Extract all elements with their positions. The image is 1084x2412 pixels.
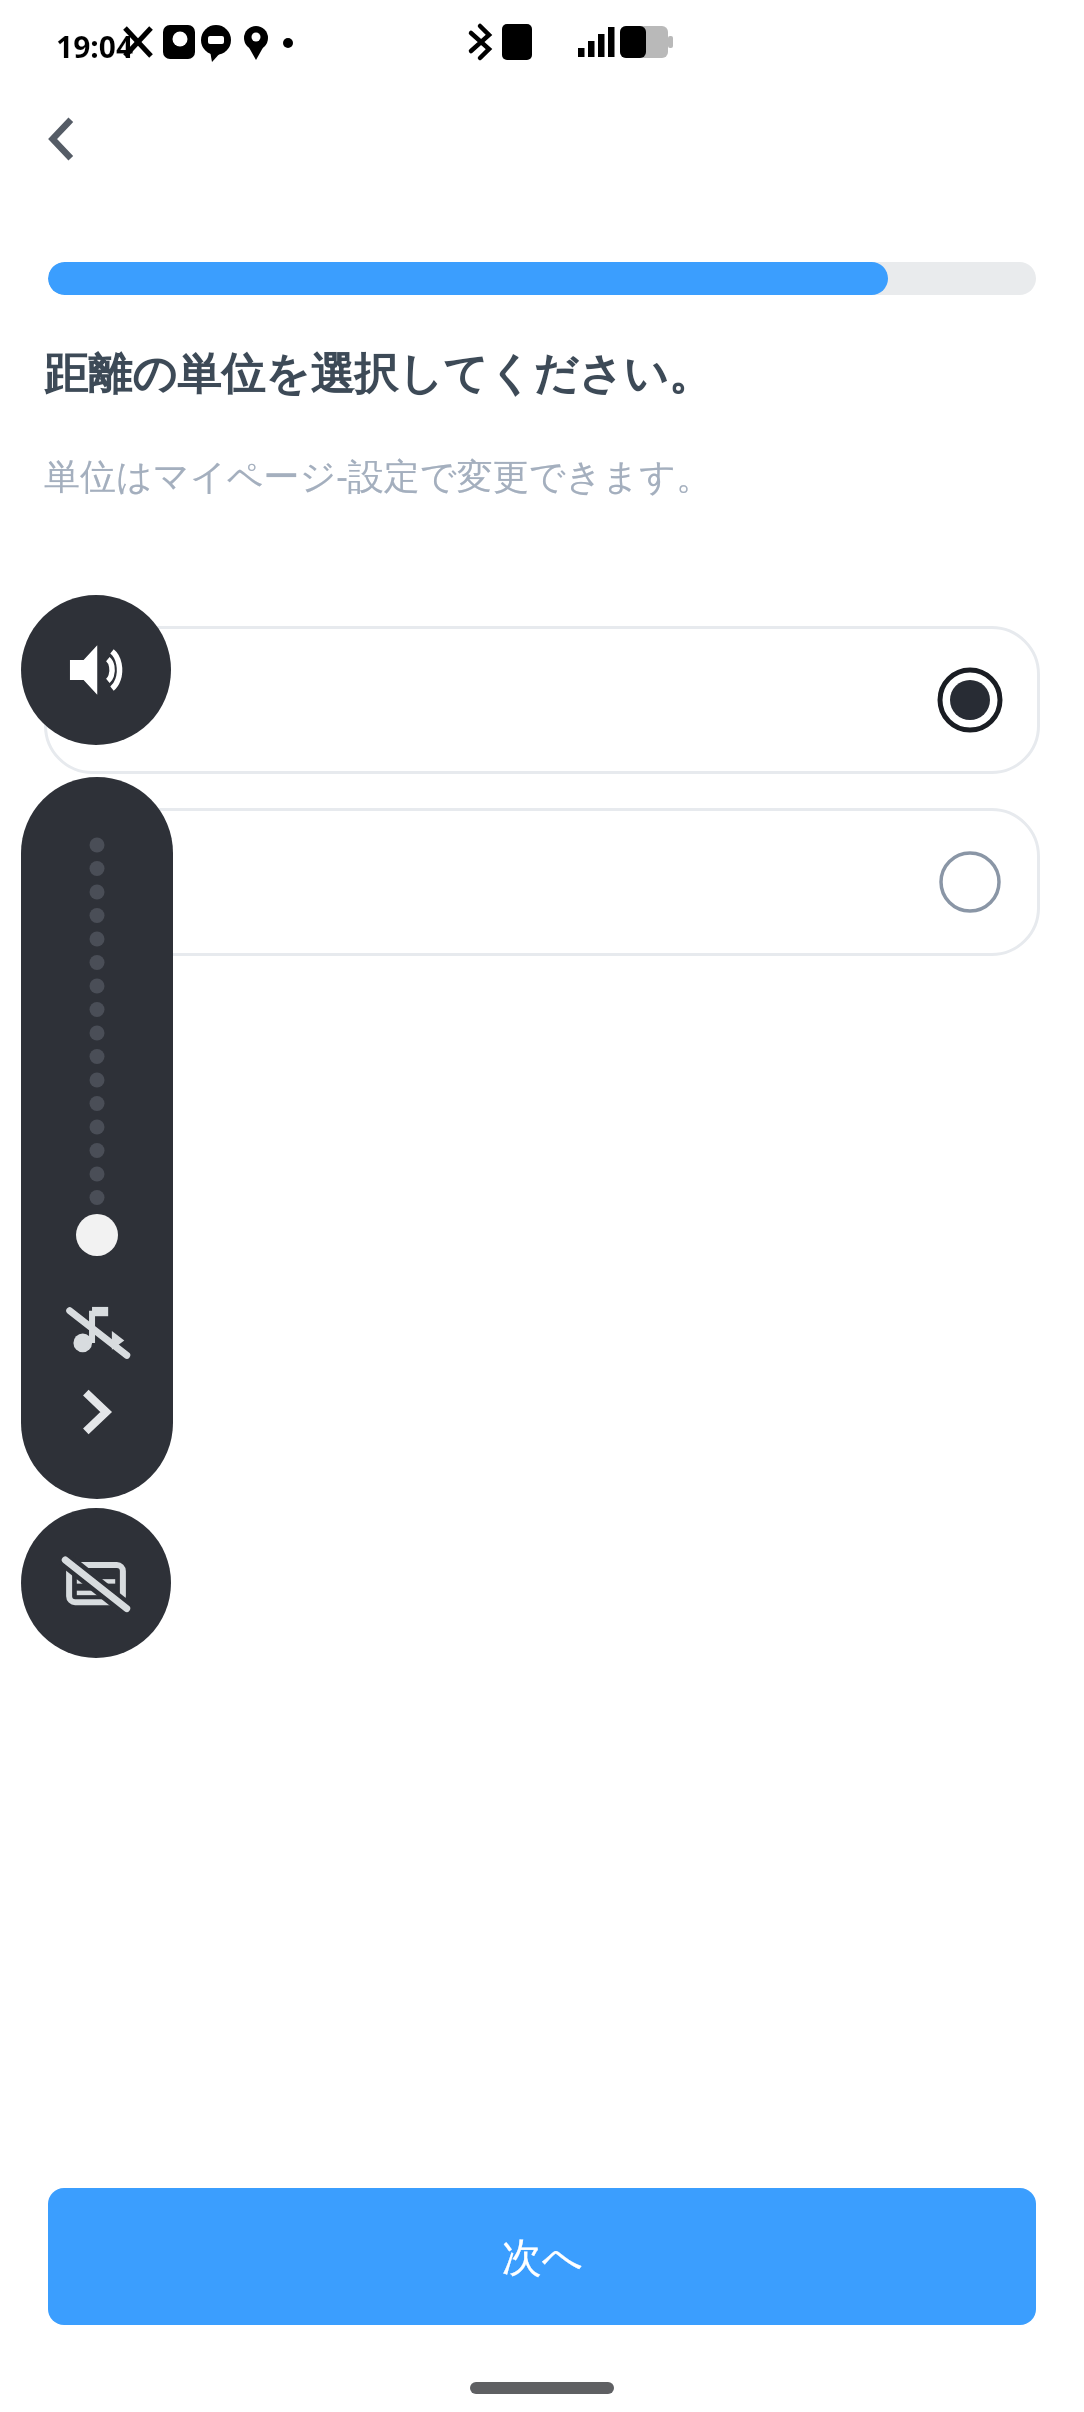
button[interactable]: Back: [22, 100, 100, 178]
staticText: 次へ: [502, 2232, 583, 2282]
staticText: 単位はマイページ-設定で変更できます。: [44, 451, 713, 500]
staticText: 距離の単位を選択してください。: [44, 347, 713, 402]
button[interactable]: Subtitles off: [21, 1508, 171, 1658]
button[interactable]: Volume: [21, 595, 171, 745]
staticText: 19:04: [56, 26, 134, 67]
button[interactable]: [44, 808, 1040, 956]
button[interactable]: 次へ: [48, 2188, 1036, 2325]
button[interactable]: [44, 626, 1040, 774]
